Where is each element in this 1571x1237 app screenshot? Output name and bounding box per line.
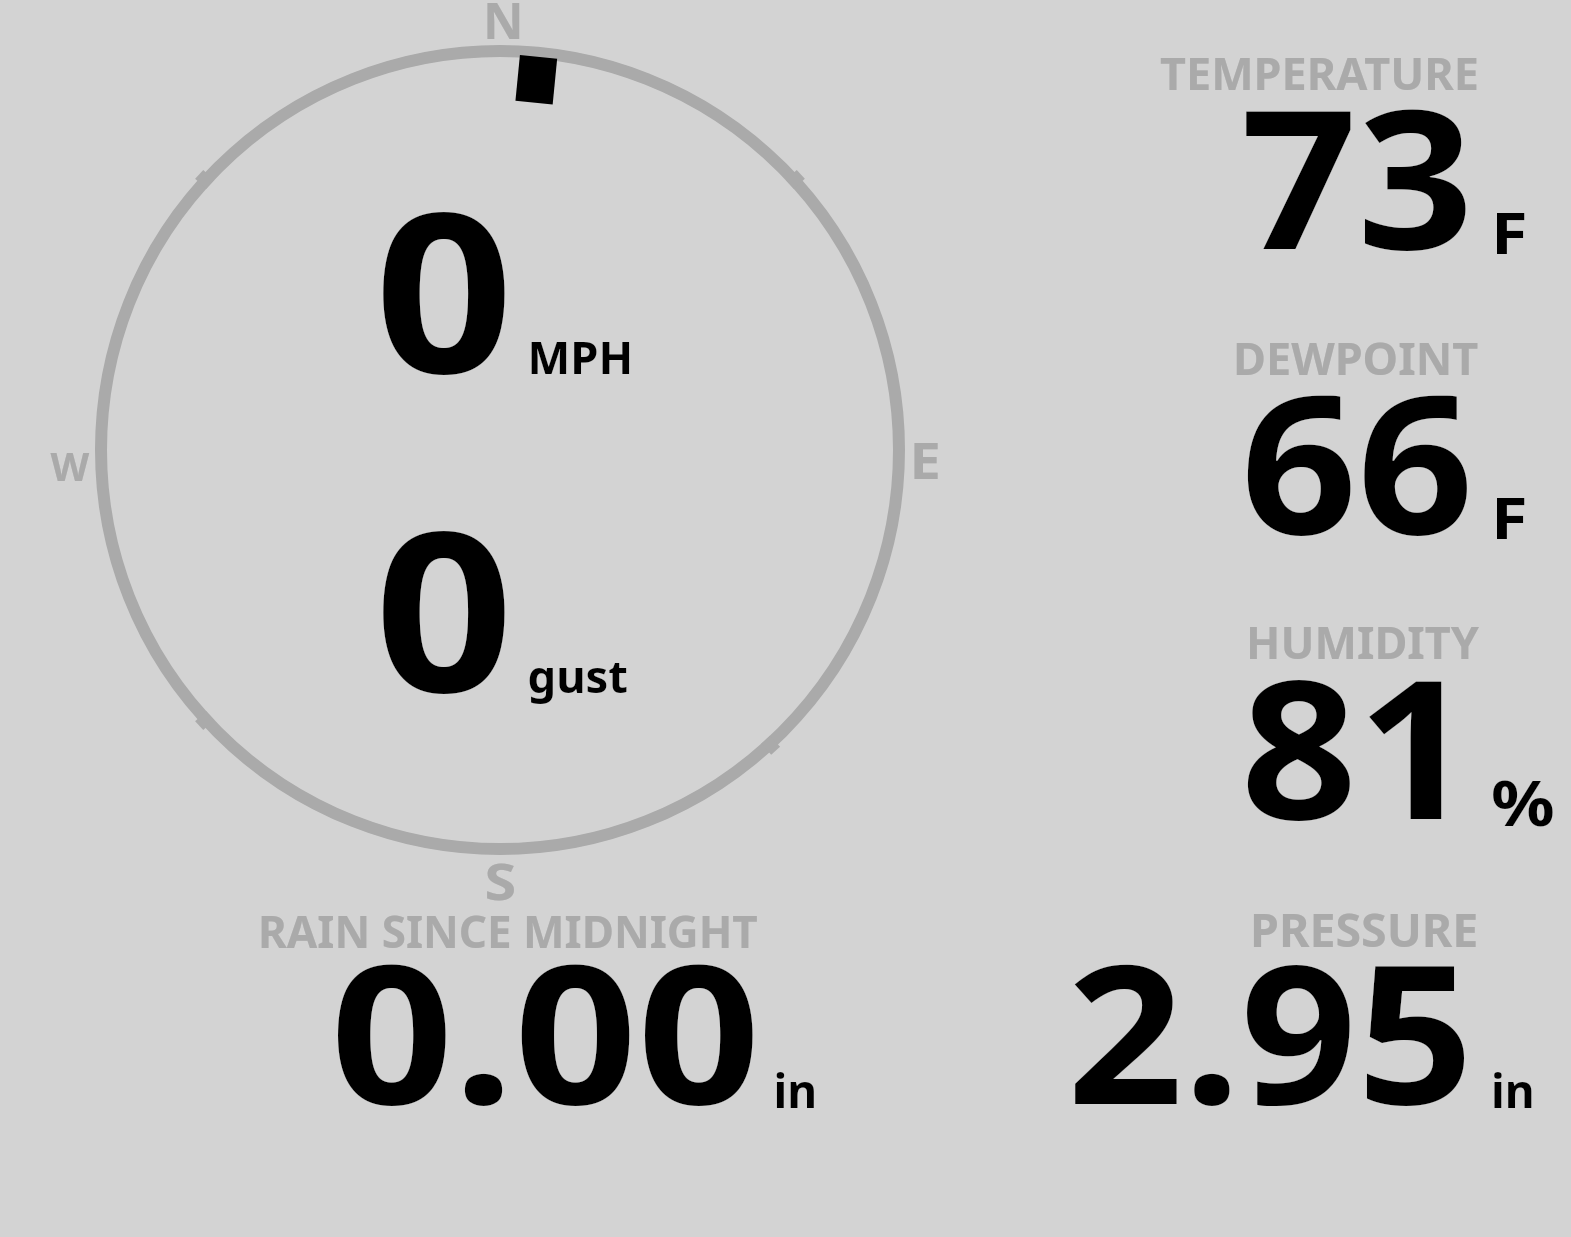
button[interactable]: Dewpoint 66 degrees F (1000, 295, 1560, 575)
button[interactable]: Rain since midnight 0.00 inches (45, 910, 955, 1135)
button[interactable]: Pressure 2.95 inches (1000, 865, 1560, 1145)
button[interactable]: Humidity 81 percent (1000, 580, 1560, 860)
button[interactable]: Wind 0 MPH, gust 0, direction north (45, 0, 955, 910)
button[interactable]: Temperature 73 degrees F (1000, 10, 1560, 290)
